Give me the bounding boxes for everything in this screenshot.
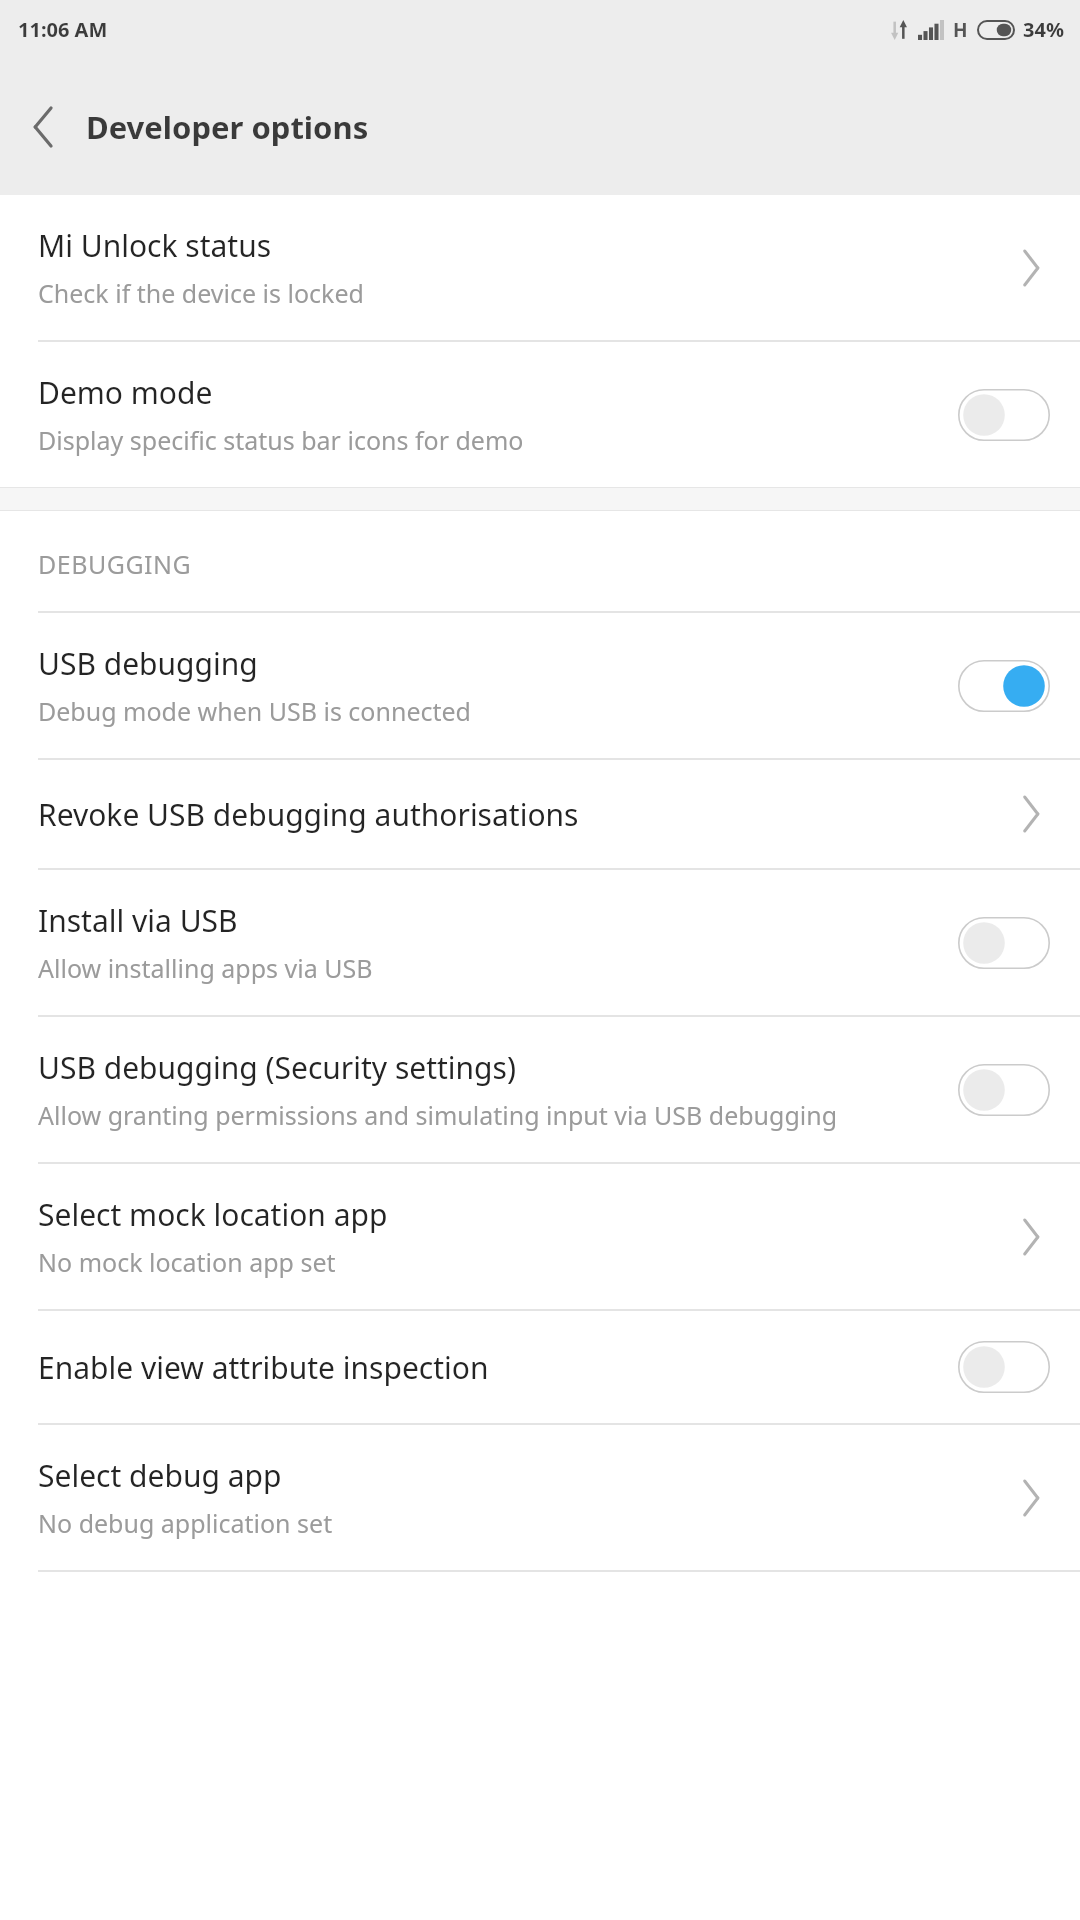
button[interactable]: Mi Unlock status — [0, 195, 1080, 340]
staticText: Select mock location app — [38, 1194, 388, 1235]
button[interactable]: Revoke USB debugging authorisations — [0, 760, 1080, 868]
button[interactable]: Select debug app — [0, 1425, 1080, 1570]
staticText: H — [953, 17, 968, 43]
staticText: DEBUGGING — [38, 547, 192, 581]
button[interactable]: USB debugging — [0, 613, 1080, 758]
staticText: 11:06 AM — [18, 16, 108, 43]
staticText: Revoke USB debugging authorisations — [38, 794, 579, 835]
button[interactable]: Back — [14, 97, 74, 157]
button[interactable]: Off — [958, 917, 1050, 969]
staticText: Install via USB — [38, 900, 238, 941]
button[interactable]: Install via USB — [0, 870, 1080, 1015]
staticText: Allow granting permissions and simulatin… — [38, 1098, 838, 1132]
button[interactable]: Off — [958, 389, 1050, 441]
staticText: No debug application set — [38, 1506, 333, 1540]
staticText: Debug mode when USB is connected — [38, 694, 471, 728]
button[interactable]: Select mock location app — [0, 1164, 1080, 1309]
button[interactable]: Demo mode — [0, 342, 1080, 487]
staticText: Select debug app — [38, 1455, 282, 1496]
staticText: USB debugging (Security settings) — [38, 1047, 516, 1088]
button[interactable]: Enable view attribute inspection — [0, 1311, 1080, 1423]
staticText: USB debugging — [38, 643, 258, 684]
staticText: Display specific status bar icons for de… — [38, 423, 524, 457]
staticText: Check if the device is locked — [38, 276, 364, 310]
button[interactable]: USB debugging (Security settings) — [0, 1017, 1080, 1162]
staticText: Mi Unlock status — [38, 225, 272, 266]
button[interactable]: Off — [958, 1341, 1050, 1393]
staticText: Developer options — [86, 106, 369, 148]
button[interactable]: Off — [958, 1064, 1050, 1116]
staticText: 34% — [1023, 16, 1064, 43]
staticText: Enable view attribute inspection — [38, 1347, 489, 1388]
staticText: Demo mode — [38, 372, 213, 413]
staticText: No mock location app set — [38, 1245, 336, 1279]
button[interactable]: On — [958, 660, 1050, 712]
staticText: Allow installing apps via USB — [38, 951, 373, 985]
